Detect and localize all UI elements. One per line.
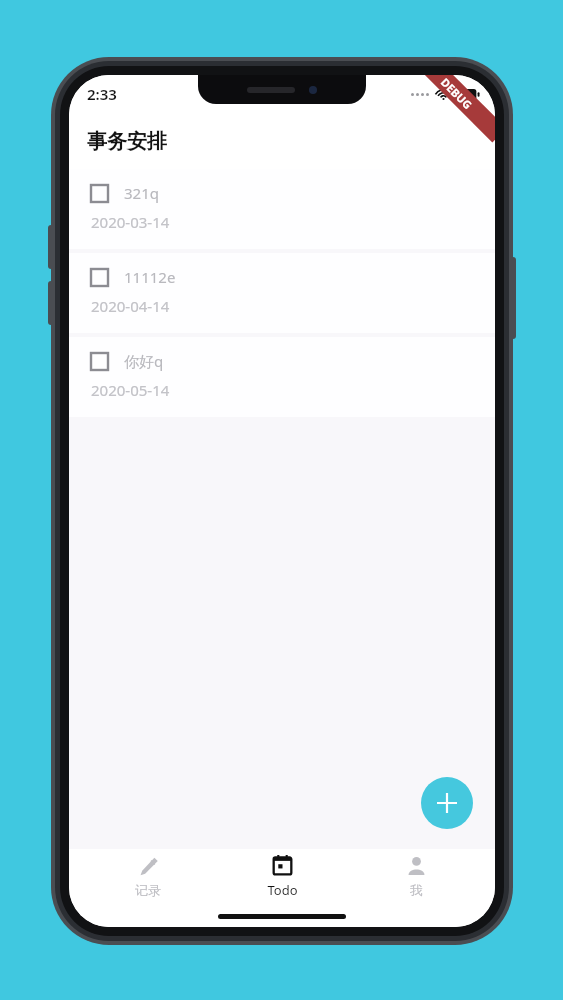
staticText: 2020-04-14 bbox=[91, 296, 170, 316]
button[interactable]: 记录 bbox=[93, 852, 203, 902]
staticText: 2020-03-14 bbox=[91, 212, 170, 232]
staticText: 2020-05-14 bbox=[91, 380, 170, 400]
staticText: DEBUG bbox=[438, 75, 475, 112]
button[interactable]: 11112e bbox=[69, 253, 495, 333]
button[interactable]: 321q bbox=[69, 169, 495, 249]
button[interactable]: 我 bbox=[361, 852, 471, 902]
staticText: 321q bbox=[124, 183, 159, 203]
staticText: 2:33 bbox=[87, 84, 117, 104]
staticText: 事务安排 bbox=[87, 129, 167, 154]
staticText: 我 bbox=[410, 882, 423, 898]
button[interactable]: Todo bbox=[227, 851, 337, 903]
staticText: 记录 bbox=[135, 882, 161, 898]
staticText: Todo bbox=[267, 881, 298, 899]
staticText: 11112e bbox=[124, 267, 176, 287]
button[interactable]: 你好q bbox=[69, 337, 495, 417]
staticText: 你好q bbox=[124, 351, 164, 371]
button[interactable]: Add todo bbox=[421, 777, 473, 829]
